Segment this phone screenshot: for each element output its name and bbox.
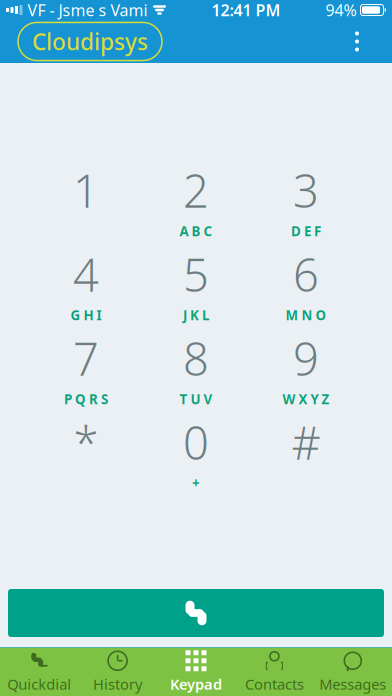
staticText: 4 bbox=[73, 244, 99, 304]
button[interactable]: # bbox=[251, 415, 361, 489]
staticText: D E F bbox=[291, 222, 321, 240]
button[interactable]: 6 bbox=[251, 247, 361, 321]
staticText: P Q R S bbox=[64, 390, 108, 408]
staticText: VF - Jsme s Vami bbox=[27, 0, 147, 21]
staticText: G H I bbox=[70, 306, 101, 324]
button[interactable]: Contacts bbox=[235, 648, 314, 696]
staticText: T U V bbox=[179, 390, 212, 408]
staticText: # bbox=[291, 412, 320, 472]
button[interactable]: Messages bbox=[314, 648, 392, 696]
staticText: 6 bbox=[293, 244, 319, 304]
staticText: 1 bbox=[73, 160, 99, 220]
staticText: 3 bbox=[293, 160, 319, 220]
staticText: Quickdial bbox=[7, 674, 71, 694]
staticText: 9 bbox=[293, 328, 319, 388]
button[interactable]: 9 bbox=[251, 331, 361, 405]
staticText: M N O bbox=[285, 306, 326, 324]
staticText: + bbox=[192, 474, 200, 492]
staticText: History bbox=[93, 674, 142, 694]
button[interactable]: Call bbox=[8, 589, 384, 637]
staticText: 2 bbox=[183, 160, 209, 220]
button[interactable]: Cloudipsys bbox=[18, 22, 162, 60]
staticText: 7 bbox=[73, 328, 99, 388]
staticText: J K L bbox=[183, 306, 209, 324]
button[interactable]: Quickdial bbox=[0, 648, 78, 696]
staticText: 0 bbox=[183, 412, 209, 472]
button[interactable]: 8 bbox=[141, 331, 251, 405]
button[interactable]: 5 bbox=[141, 247, 251, 321]
button[interactable]: More options bbox=[340, 21, 374, 61]
staticText: Cloudipsys bbox=[32, 26, 148, 56]
button[interactable]: 7 bbox=[31, 331, 141, 405]
button[interactable]: * bbox=[31, 415, 141, 489]
staticText: Contacts bbox=[245, 674, 304, 694]
button[interactable]: 0 bbox=[141, 415, 251, 489]
staticText: Messages bbox=[319, 674, 386, 694]
button[interactable]: 3 bbox=[251, 163, 361, 237]
staticText: W X Y Z bbox=[282, 390, 329, 408]
staticText: A B C bbox=[179, 222, 212, 240]
staticText: 12:41 PM bbox=[211, 0, 280, 21]
button[interactable]: 1 bbox=[31, 163, 141, 237]
button[interactable]: Keypad bbox=[157, 648, 235, 696]
staticText: Keypad bbox=[170, 674, 222, 694]
button[interactable]: 4 bbox=[31, 247, 141, 321]
staticText: 94% bbox=[325, 0, 356, 21]
button[interactable]: 2 bbox=[141, 163, 251, 237]
staticText: 5 bbox=[183, 244, 209, 304]
staticText: 8 bbox=[183, 328, 209, 388]
staticText: * bbox=[73, 412, 98, 472]
button[interactable]: History bbox=[78, 648, 157, 696]
